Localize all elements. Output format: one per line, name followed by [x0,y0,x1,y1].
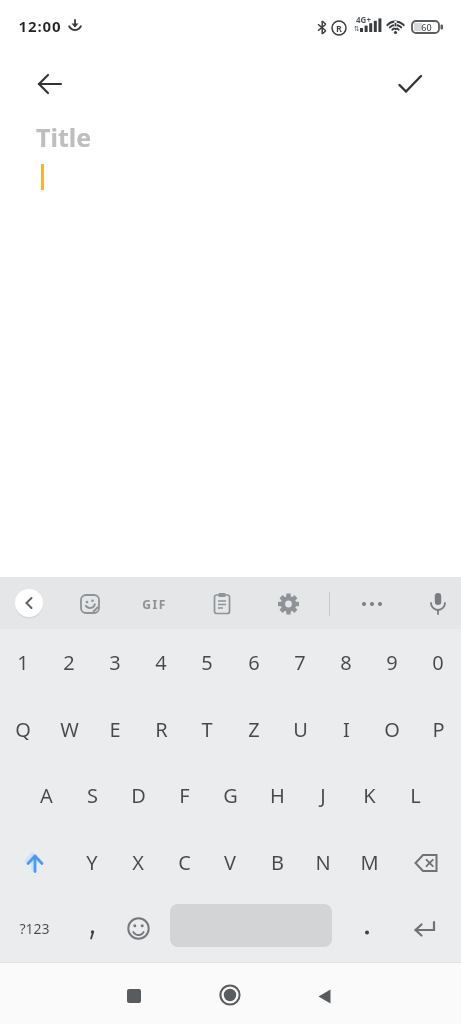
button[interactable]: V [207,829,253,896]
button[interactable]: K [346,762,392,829]
button[interactable]: E [92,696,138,763]
staticText: H [270,782,285,809]
staticText: R [155,716,168,743]
button[interactable]: B [254,829,300,896]
staticText: O [384,716,400,743]
button[interactable]: 2 [46,629,92,696]
button[interactable] [396,70,424,98]
staticText: 4 [155,649,167,676]
button[interactable]: ?123 [0,895,69,962]
staticText: ?123 [19,919,50,938]
staticText: 8 [340,649,352,676]
staticText: M [360,849,379,876]
staticText: F [179,782,190,809]
button[interactable] [212,592,232,616]
staticText: B [271,849,284,876]
staticText: P [432,716,445,743]
staticText: 5 [201,649,213,676]
button[interactable]: U [277,696,323,763]
button[interactable]: L [392,762,438,829]
button[interactable]: 6 [231,629,277,696]
button[interactable] [316,988,333,1005]
staticText: I [343,716,350,743]
staticText: V [224,849,236,876]
button[interactable] [428,591,448,617]
button[interactable]: N [300,829,346,896]
button[interactable]: GIF [136,594,172,614]
staticText: 12:00 [18,16,62,36]
button[interactable] [392,829,461,896]
button[interactable] [219,984,241,1006]
button[interactable]: 1 [0,629,46,696]
button[interactable]: R [138,696,184,763]
button[interactable]: S [69,762,115,829]
staticText: 3 [109,649,121,676]
staticText: A [40,782,53,809]
staticText: 60 [421,21,432,33]
staticText: 7 [294,649,306,676]
button[interactable] [392,895,461,962]
button[interactable]: A [23,762,69,829]
button[interactable] [79,593,101,615]
button[interactable] [161,895,345,962]
staticText: N [315,849,331,876]
button[interactable]: C [161,829,207,896]
button[interactable]: I [323,696,369,763]
staticText: C [178,849,191,876]
button[interactable]: M [346,829,392,896]
button[interactable] [15,589,43,617]
button[interactable]: P [415,696,461,763]
staticText: GIF [142,596,167,612]
staticText: J [320,782,326,809]
button[interactable]: X [115,829,161,896]
staticText: 2 [63,649,75,676]
staticText: G [223,782,238,809]
button[interactable]: 9 [369,629,415,696]
staticText: T [201,716,213,743]
button[interactable]: J [300,762,346,829]
button[interactable]: H [254,762,300,829]
staticText: 6 [248,649,260,676]
button[interactable]: T [184,696,230,763]
button[interactable]: W [46,696,92,763]
staticText: 0 [432,649,444,676]
button[interactable]: 7 [277,629,323,696]
button[interactable]: D [115,762,161,829]
button[interactable]: 8 [323,629,369,696]
staticText: E [109,716,121,743]
button[interactable]: Z [231,696,277,763]
staticText: D [131,782,146,809]
staticText: S [87,782,98,809]
button[interactable]: F [161,762,207,829]
button[interactable] [0,829,69,896]
button[interactable] [358,598,386,610]
button[interactable] [36,70,64,98]
button[interactable]: 3 [92,629,138,696]
button[interactable]: Y [69,829,115,896]
staticText: 1 [17,649,29,676]
staticText: R [336,22,342,34]
staticText: W [60,716,79,743]
button[interactable]: 4 [138,629,184,696]
staticText: Y [86,849,98,876]
staticText: X [132,849,144,876]
button[interactable] [69,895,115,962]
button[interactable]: 5 [184,629,230,696]
staticText: 9 [386,649,398,676]
staticText: Title [36,120,92,154]
staticText: K [363,782,376,809]
staticText: Z [248,716,260,743]
button[interactable] [277,592,300,616]
button[interactable]: 0 [415,629,461,696]
staticText: 4G+ [356,14,371,25]
button[interactable] [127,989,141,1003]
staticText: L [410,782,421,809]
staticText: ⇅ [354,25,360,33]
staticText: U [293,716,308,743]
button[interactable]: O [369,696,415,763]
button[interactable] [346,895,392,962]
button[interactable]: G [207,762,253,829]
staticText: Q [15,716,31,743]
button[interactable]: Q [0,696,46,763]
button[interactable] [115,895,161,962]
